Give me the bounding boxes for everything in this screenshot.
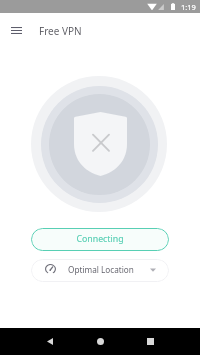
button[interactable]: Home [88,329,112,353]
button[interactable]: Back [38,329,62,353]
button[interactable]: Open navigation menu [4,18,28,42]
staticText: Free VPN [39,24,82,38]
staticText: Optimal Location [68,264,134,275]
button[interactable]: Connecting [31,228,169,251]
button[interactable]: Optimal Location [31,259,169,282]
staticText: Connecting [76,233,124,245]
staticText: 1:19 [181,2,196,12]
button[interactable]: Recent apps [138,329,162,353]
